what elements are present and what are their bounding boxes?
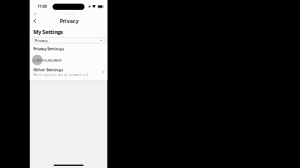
button[interactable]: Privacy (30, 35, 107, 43)
staticText: Communication (33, 57, 61, 63)
button[interactable]: Other Settings (30, 65, 107, 80)
button[interactable]: Back (32, 19, 38, 23)
staticText: 11:00 (37, 4, 46, 9)
staticText: Privacy (60, 17, 79, 25)
staticText: Where copy here and an unnamed end (33, 73, 88, 77)
button[interactable]: Communication (30, 51, 61, 65)
staticText: Privacy Settings (33, 46, 64, 51)
staticText: Privacy (35, 38, 48, 43)
staticText: settings (63, 12, 74, 16)
staticText: My Settings (33, 28, 63, 35)
staticText: Other Settings (33, 67, 63, 72)
button[interactable]: Close (32, 11, 38, 17)
